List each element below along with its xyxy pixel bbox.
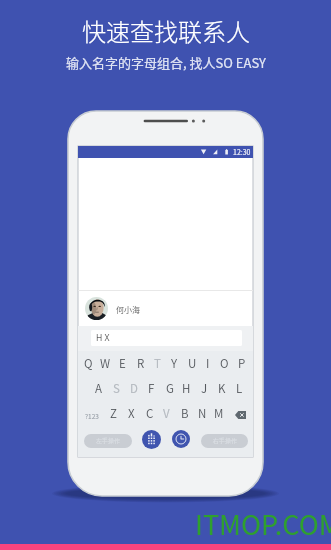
staticText: B: [181, 405, 189, 422]
staticText: U: [188, 355, 197, 372]
button[interactable]: V: [158, 404, 175, 424]
staticText: 12:30: [233, 147, 251, 157]
staticText: 何小海: [116, 304, 140, 316]
staticText: C: [146, 405, 154, 422]
button[interactable]: W: [97, 354, 114, 374]
staticText: T: [154, 355, 161, 372]
staticText: 右手操作: [213, 437, 237, 445]
button[interactable]: X: [123, 404, 140, 424]
staticText: ITMOP.COM: [195, 504, 331, 543]
button[interactable]: M: [210, 404, 227, 424]
button[interactable]: A: [90, 379, 107, 399]
button[interactable]: L: [231, 379, 248, 399]
staticText: G: [166, 380, 174, 397]
button[interactable]: D: [125, 379, 142, 399]
button[interactable]: I: [199, 354, 216, 374]
staticText: Y: [171, 355, 178, 372]
button[interactable]: Backspace: [235, 411, 246, 419]
button[interactable]: Z: [105, 404, 122, 424]
staticText: I: [206, 355, 210, 372]
staticText: W: [100, 355, 111, 372]
staticText: H X: [96, 332, 110, 344]
button[interactable]: O: [216, 354, 233, 374]
button[interactable]: ?123: [82, 407, 102, 423]
button[interactable]: S: [108, 379, 125, 399]
staticText: ?123: [85, 411, 99, 420]
staticText: N: [198, 405, 207, 422]
staticText: F: [148, 380, 155, 397]
button[interactable]: Keypad: [142, 430, 161, 449]
button[interactable]: E: [114, 354, 131, 374]
staticText: H: [182, 380, 191, 397]
staticText: L: [236, 380, 243, 397]
staticText: P: [238, 355, 246, 372]
staticText: Z: [110, 405, 117, 422]
staticText: 左手操作: [96, 437, 120, 445]
staticText: R: [137, 355, 145, 372]
staticText: S: [113, 380, 120, 397]
staticText: K: [218, 380, 226, 397]
staticText: A: [95, 380, 102, 397]
staticText: J: [201, 380, 208, 397]
staticText: 输入名字的字母组合, 找人SO EASY: [66, 53, 266, 72]
staticText: 快速查找联系人: [82, 13, 250, 48]
staticText: X: [128, 405, 135, 422]
button[interactable]: Recent: [172, 430, 190, 448]
button[interactable]: T: [149, 354, 166, 374]
staticText: V: [163, 405, 170, 422]
button[interactable]: 左手操作: [84, 434, 132, 448]
button[interactable]: K: [213, 379, 230, 399]
button[interactable]: N: [194, 404, 211, 424]
button[interactable]: U: [184, 354, 201, 374]
button[interactable]: C: [141, 404, 158, 424]
button[interactable]: 何小海: [78, 291, 253, 326]
button[interactable]: R: [132, 354, 149, 374]
button[interactable]: H: [178, 379, 195, 399]
button[interactable]: Q: [80, 354, 97, 374]
staticText: M: [214, 405, 224, 422]
button[interactable]: 右手操作: [201, 434, 248, 448]
button[interactable]: H X: [91, 330, 242, 346]
staticText: Q: [84, 355, 93, 372]
button[interactable]: P: [233, 354, 250, 374]
staticText: E: [119, 355, 126, 372]
staticText: D: [130, 380, 138, 397]
button[interactable]: J: [196, 379, 213, 399]
button[interactable]: G: [161, 379, 178, 399]
button[interactable]: B: [176, 404, 193, 424]
button[interactable]: Y: [166, 354, 183, 374]
staticText: O: [220, 355, 229, 372]
button[interactable]: F: [143, 379, 160, 399]
